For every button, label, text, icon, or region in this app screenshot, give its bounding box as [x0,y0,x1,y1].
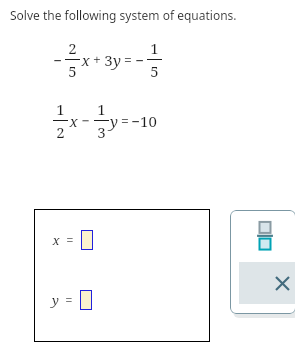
staticText: − [81,111,90,130]
staticText: 5 [150,61,159,81]
staticText: 3 [97,122,106,142]
button[interactable]: Clear [239,262,295,304]
staticText: − [131,111,140,131]
staticText: x [81,50,90,70]
staticText: x [52,231,60,249]
button[interactable]: x [52,230,93,250]
staticText: y [110,111,118,131]
staticText: − [135,50,144,70]
staticText: 5 [68,61,77,81]
other: y value input [80,290,92,310]
staticText: Solve the following system of equations. [10,7,237,23]
staticText: 2 [56,122,65,142]
other: x value input [81,230,93,250]
staticText: = [65,291,73,309]
staticText: 2 [68,38,77,58]
staticText: 3 [104,50,113,70]
staticText: = [66,231,74,249]
staticText: + [93,50,101,69]
staticText: 10 [140,111,157,131]
staticText: − [53,50,62,70]
staticText: y [52,291,59,309]
button[interactable]: Fraction [252,216,278,256]
staticText: 1 [56,99,65,119]
staticText: 1 [97,99,106,119]
button[interactable]: y [52,290,92,310]
staticText: x [69,111,78,131]
staticText: y [113,50,121,70]
staticText: = [121,111,129,130]
staticText: = [124,50,132,69]
staticText: 1 [150,38,159,58]
